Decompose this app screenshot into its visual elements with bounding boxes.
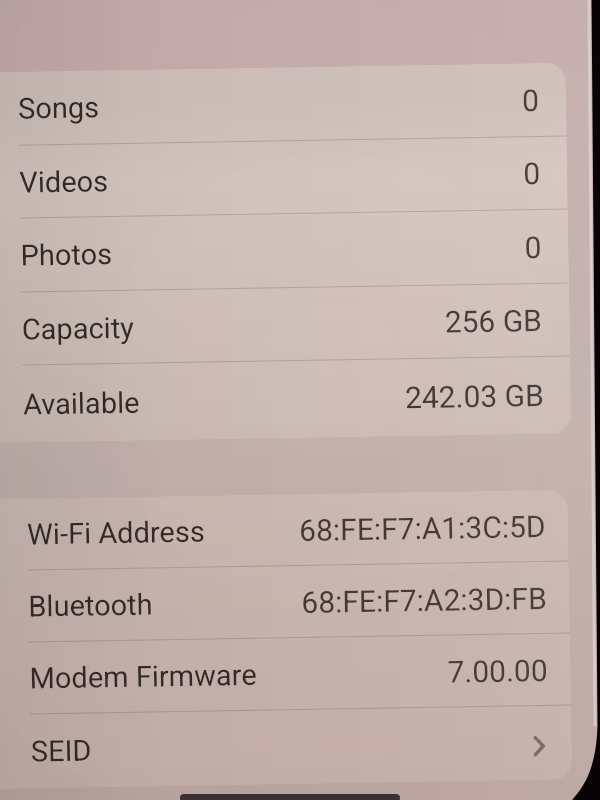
button[interactable]: SEID xyxy=(0,705,572,789)
staticText: 7.00.00 xyxy=(447,653,549,690)
button[interactable]: Videos xyxy=(0,136,568,219)
staticText: 242.03 GB xyxy=(405,378,544,415)
button[interactable]: Available xyxy=(0,356,572,443)
staticText: Songs xyxy=(18,90,100,126)
button[interactable]: Wi-Fi Address xyxy=(0,490,569,571)
staticText: Available xyxy=(23,386,140,422)
staticText: 0 xyxy=(522,83,539,118)
staticText: 68:FE:F7:A2:3D:FB xyxy=(301,581,548,620)
staticText: Videos xyxy=(19,164,109,200)
button[interactable]: Modem Firmware xyxy=(0,634,571,715)
staticText: SEID xyxy=(30,733,92,768)
staticText: Wi-Fi Address xyxy=(27,515,205,551)
button[interactable]: Photos xyxy=(0,209,569,293)
staticText: 256 GB xyxy=(444,303,543,340)
button[interactable]: Bluetooth xyxy=(0,562,570,643)
staticText: Modem Firmware xyxy=(29,658,258,695)
staticText: Capacity xyxy=(21,311,135,347)
button[interactable]: Songs xyxy=(0,63,567,146)
staticText: Photos xyxy=(20,237,113,273)
other: SEID details xyxy=(534,736,545,756)
button[interactable]: Capacity xyxy=(0,283,570,366)
staticText: 0 xyxy=(523,156,541,191)
staticText: 68:FE:F7:A1:3C:5D xyxy=(299,509,546,548)
staticText: 0 xyxy=(524,230,542,265)
staticText: Bluetooth xyxy=(28,587,154,624)
